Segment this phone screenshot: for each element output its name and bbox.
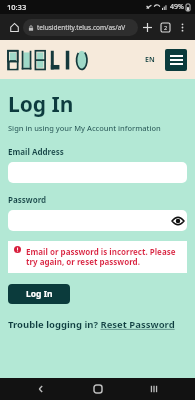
- staticText: Password: [8, 194, 47, 205]
- button[interactable]: Log In: [8, 284, 70, 304]
- button[interactable]: PUBLIC Mobile home: [8, 49, 94, 71]
- button[interactable]: Menu: [165, 49, 187, 71]
- staticText: Log In: [8, 90, 74, 119]
- button[interactable]: Back: [26, 378, 56, 400]
- button[interactable]: Trouble logging in? Reset Password: [8, 318, 187, 331]
- button[interactable]: Recent apps: [139, 378, 169, 400]
- staticText: telusidentity.telus.com/as/aV: [37, 23, 126, 32]
- button[interactable]: EN: [141, 51, 159, 69]
- button[interactable]: Tabs: [156, 18, 174, 36]
- staticText: 49%: [170, 2, 184, 12]
- button[interactable]: Home: [83, 378, 113, 400]
- staticText: 2: [164, 24, 168, 31]
- staticText: Email or password is incorrect. Please t…: [26, 246, 181, 268]
- staticText: EN: [145, 55, 155, 65]
- staticText: Trouble logging in? Reset Password: [8, 318, 175, 331]
- staticText: Log In: [26, 288, 53, 300]
- staticText: Sign in using your My Account informatio…: [8, 123, 161, 133]
- staticText: Email Address: [8, 146, 64, 157]
- button[interactable]: Show password: [168, 211, 187, 230]
- button[interactable]: Show password: [8, 210, 187, 231]
- button[interactable]: New tab: [138, 18, 156, 36]
- button[interactable]: More options: [174, 19, 190, 35]
- staticText: 10:33: [7, 2, 27, 12]
- button[interactable]: Home: [5, 18, 23, 36]
- button[interactable]: [8, 162, 187, 183]
- button[interactable]: telusidentity.telus.com/as/aV: [23, 19, 138, 36]
